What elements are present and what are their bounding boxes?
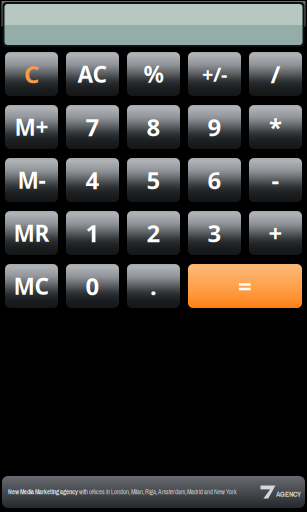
button[interactable]: 1 [66,211,119,255]
button[interactable]: 2 [127,211,180,255]
button[interactable]: MC [5,264,58,308]
staticText: 7 [85,111,99,143]
staticText: 2 [146,217,160,249]
staticText: AC [77,59,107,89]
button[interactable]: M- [5,158,58,202]
button[interactable]: MR [5,211,58,255]
button[interactable]: 5 [127,158,180,202]
button[interactable]: . [127,264,180,308]
button[interactable]: * [249,105,302,149]
staticText: - [271,164,279,196]
staticText: 3 [207,217,221,249]
button[interactable]: 3 [188,211,241,255]
staticText: % [143,59,163,89]
staticText: M+ [14,112,48,142]
staticText: +/- [202,61,227,87]
staticText: with offices in London, Milan, Riga, Ams… [78,488,237,496]
staticText: 9 [207,111,221,143]
button[interactable]: + [249,211,302,255]
staticText: 1 [85,217,99,249]
staticText: = [238,270,252,302]
staticText: MC [13,271,49,301]
staticText: 4 [85,164,99,196]
staticText: C [24,58,39,90]
button[interactable]: 6 [188,158,241,202]
button[interactable]: % [127,52,180,96]
button[interactable]: C [5,52,58,96]
button[interactable]: M+ [5,105,58,149]
button[interactable]: 9 [188,105,241,149]
staticText: / [270,58,280,90]
button[interactable]: 0 [66,264,119,308]
button[interactable]: New Media Marketing agency [0,476,307,508]
staticText: 8 [146,111,160,143]
staticText: AGENCY [276,489,301,499]
button[interactable]: / [249,52,302,96]
button[interactable]: = [188,264,302,308]
button[interactable]: AC [66,52,119,96]
staticText: 5 [146,164,160,196]
button[interactable]: 4 [66,158,119,202]
staticText: + [268,217,282,249]
staticText: . [150,270,157,302]
button[interactable]: 8 [127,105,180,149]
staticText: * [269,111,282,143]
button[interactable]: 7 [66,105,119,149]
staticText: New Media Marketing agency [8,488,78,496]
staticText: 0 [85,270,99,302]
staticText: M- [17,165,45,195]
staticText: 6 [207,164,221,196]
button[interactable]: - [249,158,302,202]
staticText: MR [13,218,49,248]
button[interactable]: +/- [188,52,241,96]
